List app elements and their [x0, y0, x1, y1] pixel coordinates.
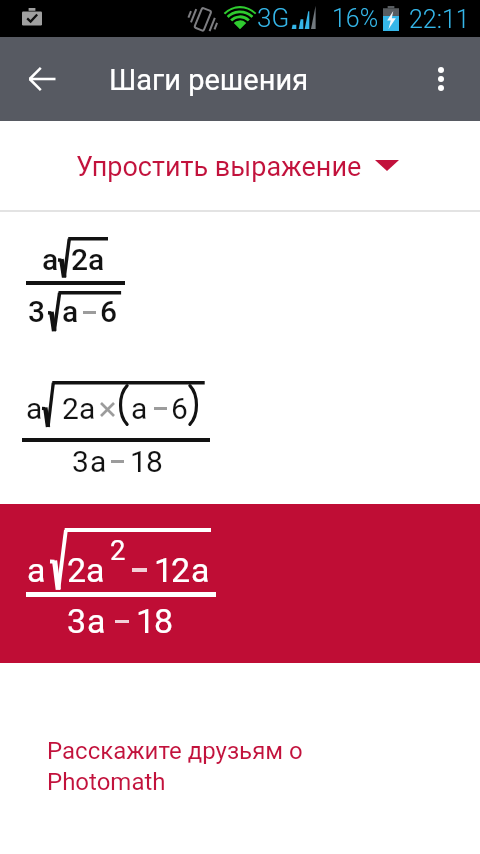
staticText: 3 [67, 601, 87, 641]
staticText: Упростить выражение [76, 151, 362, 183]
button[interactable]: Упростить выражение [0, 123, 480, 211]
staticText: 2 [171, 550, 191, 590]
staticText: 2 [71, 242, 89, 277]
staticText: 1 [154, 550, 174, 590]
staticText: 3 [28, 294, 46, 329]
button[interactable]: More options [415, 53, 467, 105]
staticText: 1 [136, 601, 156, 641]
staticText: a [27, 550, 46, 590]
staticText: a [131, 391, 148, 426]
staticText: 2 [67, 550, 87, 590]
staticText: 22:11 [409, 5, 470, 34]
staticText: a [88, 242, 105, 277]
staticText: a [42, 242, 59, 277]
staticText: 8 [146, 444, 163, 479]
staticText: a [86, 550, 105, 590]
staticText: a [87, 601, 106, 641]
button[interactable]: Back [14, 51, 70, 107]
staticText: 6 [100, 294, 118, 329]
staticText: 16% [332, 4, 379, 33]
staticText: a [191, 550, 210, 590]
staticText: a [62, 294, 79, 329]
staticText: a [26, 391, 43, 426]
staticText: 3 [72, 444, 89, 479]
staticText: 8 [154, 601, 174, 641]
staticText: Шаги решения [109, 63, 309, 97]
staticText: 1 [130, 444, 147, 479]
staticText: 6 [171, 391, 188, 426]
button[interactable]: Расскажите друзьям о Photomath [47, 737, 315, 796]
button[interactable] [0, 504, 480, 663]
staticText: 2 [110, 534, 126, 566]
staticText: a [90, 444, 107, 479]
staticText: 3G [257, 3, 290, 33]
staticText: 2 [62, 391, 79, 426]
staticText: a [79, 391, 96, 426]
